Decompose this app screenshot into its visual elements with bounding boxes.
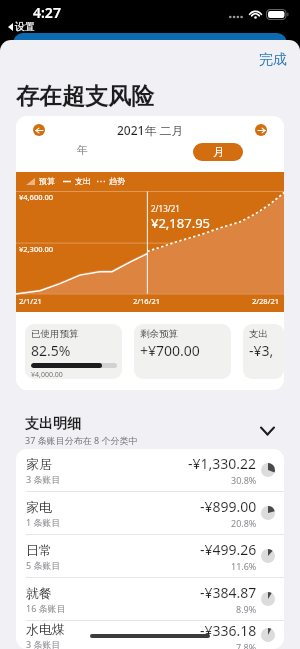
staticText: ¥2,300.00: [19, 244, 54, 254]
button[interactable]: 日常: [16, 535, 284, 577]
button[interactable]: 家电: [16, 492, 284, 534]
staticText: 年: [77, 143, 88, 157]
staticText: 4:27: [33, 3, 61, 22]
button[interactable]: 月: [193, 143, 243, 161]
staticText: 3 条账目: [26, 473, 61, 485]
staticText: -¥1,330.22: [188, 454, 257, 473]
staticText: 支出: [249, 328, 268, 340]
staticText: 5 条账目: [26, 559, 61, 571]
button[interactable]: 支出: [243, 324, 284, 379]
staticText: 完成: [259, 51, 287, 69]
button[interactable]: 家居: [16, 449, 284, 491]
staticText: -¥384.87: [200, 583, 257, 602]
staticText: 2021年 二月: [117, 122, 184, 138]
button[interactable]: 支出明细: [0, 413, 300, 448]
staticText: 就餐: [26, 585, 52, 601]
staticText: 11.6%: [231, 560, 257, 572]
button[interactable]: 完成: [246, 45, 300, 75]
staticText: 1 条账目: [26, 516, 61, 528]
staticText: 月: [213, 145, 224, 159]
staticText: 20.8%: [231, 517, 257, 529]
staticText: 2/13/21: [151, 203, 180, 214]
staticText: 支出: [75, 176, 91, 186]
staticText: 趋势: [109, 176, 125, 186]
staticText: ¥4,000.00: [31, 370, 63, 379]
staticText: 剩余预算: [140, 328, 178, 340]
staticText: 已使用预算: [31, 328, 79, 340]
staticText: 3 条账目: [26, 638, 61, 649]
button[interactable]: 剩余预算: [134, 324, 231, 379]
staticText: 水电煤: [26, 621, 65, 637]
staticText: 家居: [26, 456, 52, 472]
staticText: -¥499.26: [200, 540, 257, 559]
staticText: ¥4,600.00: [19, 192, 54, 202]
staticText: ¥2,187.95: [151, 214, 211, 232]
staticText: 支出明细: [25, 415, 81, 433]
staticText: 82.5%: [31, 341, 71, 360]
staticText: 设置: [15, 20, 35, 33]
staticText: 37 条账目分布在 8 个分类中: [25, 434, 138, 446]
staticText: 7.8%: [236, 641, 257, 649]
staticText: -¥899.00: [200, 497, 257, 516]
staticText: 日常: [26, 542, 52, 558]
button[interactable]: Previous month: [33, 124, 45, 136]
staticText: -¥336.18: [200, 621, 257, 640]
staticText: +¥700.00: [140, 341, 200, 360]
button[interactable]: Next month: [255, 124, 267, 136]
staticText: 30.8%: [231, 474, 257, 486]
staticText: 存在超支风险: [16, 82, 154, 111]
staticText: 8.9%: [236, 603, 257, 615]
button[interactable]: 已使用预算: [25, 324, 122, 379]
staticText: -¥3,300.00: [249, 341, 280, 360]
staticText: 预算: [39, 176, 55, 186]
button[interactable]: 年: [16, 143, 100, 165]
button[interactable]: 就餐: [16, 578, 284, 620]
staticText: 16 条账目: [26, 602, 66, 614]
button[interactable]: 水电煤: [16, 621, 284, 649]
staticText: 家电: [26, 499, 52, 515]
staticText: 2/1/21: [19, 296, 42, 306]
staticText: 2/28/21: [252, 296, 280, 306]
staticText: 2/16/21: [133, 296, 161, 306]
